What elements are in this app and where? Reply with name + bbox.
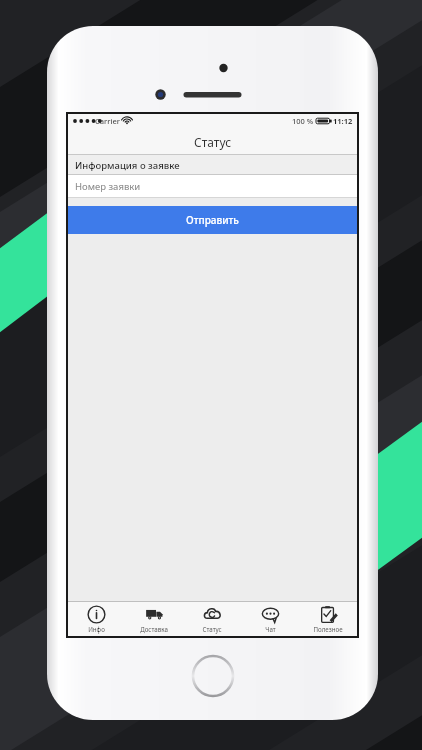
- staticText: Статус: [194, 134, 232, 150]
- button[interactable]: Инфо: [68, 602, 125, 636]
- button[interactable]: Чат: [241, 602, 299, 636]
- button[interactable]: Полезное: [299, 602, 357, 636]
- staticText: Отправить: [186, 213, 239, 227]
- staticText: 100 %: [292, 116, 314, 126]
- staticText: Инфо: [88, 625, 105, 633]
- staticText: Номер заявки: [75, 180, 141, 193]
- staticText: Carrier: [95, 116, 120, 126]
- staticText: Полезное: [313, 625, 343, 633]
- button[interactable]: Отправить: [68, 206, 357, 234]
- button[interactable]: Номер заявки: [68, 175, 357, 198]
- staticText: Доставка: [140, 625, 168, 633]
- staticText: Чат: [265, 625, 276, 633]
- staticText: Информация о заявке: [75, 159, 180, 172]
- staticText: Статус: [202, 625, 222, 633]
- button[interactable]: Доставка: [125, 602, 183, 636]
- button[interactable]: Статус: [183, 602, 241, 636]
- staticText: 11:12: [333, 116, 353, 126]
